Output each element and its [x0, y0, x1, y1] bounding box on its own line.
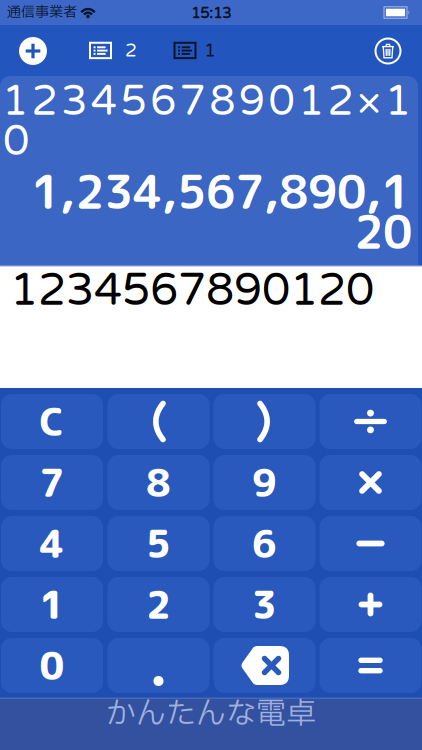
staticText: 1234567890120: [10, 264, 374, 317]
staticText: かんたんな電卓: [106, 692, 316, 737]
staticText: 1: [204, 39, 216, 62]
staticText: 3: [252, 578, 277, 631]
staticText: 通信事業者: [7, 2, 77, 23]
staticText: 20: [354, 199, 412, 264]
staticText: C: [39, 395, 64, 448]
staticText: 2: [125, 39, 137, 62]
staticText: 1: [39, 578, 64, 631]
staticText: 2: [146, 578, 171, 631]
staticText: 8: [146, 456, 171, 509]
staticText: 9: [252, 456, 277, 509]
staticText: 6: [252, 517, 277, 570]
staticText: 0: [39, 639, 64, 692]
staticText: 123456789012×1: [2, 77, 411, 126]
staticText: 4: [39, 517, 64, 570]
staticText: 5: [146, 517, 171, 570]
staticText: 0: [3, 117, 29, 166]
staticText: 7: [39, 456, 64, 509]
staticText: 1,234,567,890,1: [31, 159, 410, 224]
staticText: 15:13: [191, 5, 231, 22]
